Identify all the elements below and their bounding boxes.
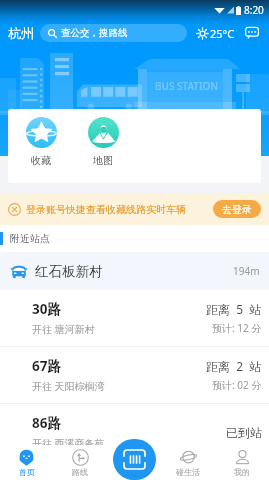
- staticText: 25°C: [210, 26, 235, 41]
- staticText: BUS STATION: [155, 79, 219, 93]
- button[interactable]: 路线: [53, 445, 107, 480]
- staticText: 67路: [32, 357, 61, 375]
- staticText: 收藏: [31, 154, 51, 167]
- staticText: 路线: [72, 467, 88, 477]
- button[interactable]: 碰生活: [161, 445, 215, 480]
- button[interactable]: 首页: [0, 445, 53, 480]
- staticText: 附近站点: [10, 232, 50, 245]
- staticText: 预计: 02 分: [212, 378, 262, 392]
- button[interactable]: 30路: [0, 290, 269, 347]
- staticText: 8:20: [244, 3, 264, 17]
- staticText: 我的: [234, 467, 250, 477]
- button[interactable]: 86路: [0, 404, 269, 461]
- staticText: 杭州: [8, 25, 34, 41]
- staticText: 首页: [19, 467, 35, 477]
- button[interactable]: 去登录: [213, 200, 261, 218]
- staticText: 去登录: [222, 203, 252, 216]
- staticText: 86路: [32, 414, 61, 432]
- button[interactable]: 我的: [215, 445, 269, 480]
- staticText: 30路: [32, 300, 61, 318]
- button[interactable]: 67路: [0, 347, 269, 404]
- button[interactable]: 收藏: [10, 117, 72, 183]
- staticText: 登录账号快捷查看收藏线路实时车辆: [26, 203, 186, 216]
- staticText: 查公交，搜路线: [61, 27, 128, 39]
- button[interactable]: Bus card: [113, 439, 156, 480]
- staticText: 开往 天阳棕榈湾: [32, 379, 105, 393]
- staticText: 194m: [233, 264, 260, 278]
- staticText: 预计: 12 分: [212, 321, 262, 335]
- button[interactable]: 查公交，搜路线: [40, 24, 187, 42]
- staticText: 开往 塘河新村: [32, 322, 95, 336]
- staticText: 红石板新村: [35, 263, 103, 280]
- staticText: 已到站: [226, 425, 262, 440]
- staticText: 距离 2 站: [206, 358, 262, 374]
- button[interactable]: 地图: [72, 117, 134, 183]
- staticText: 距离 5 站: [206, 301, 262, 317]
- button[interactable]: 杭州: [8, 25, 34, 41]
- button[interactable]: Close: [8, 203, 21, 216]
- staticText: 开往 西溪商务苑: [32, 436, 105, 450]
- button[interactable]: Messages: [245, 26, 259, 40]
- staticText: 地图: [93, 154, 113, 167]
- button[interactable]: Weather: [196, 26, 235, 41]
- staticText: 碰生活: [176, 467, 200, 477]
- button[interactable]: 红石板新村: [0, 252, 269, 290]
